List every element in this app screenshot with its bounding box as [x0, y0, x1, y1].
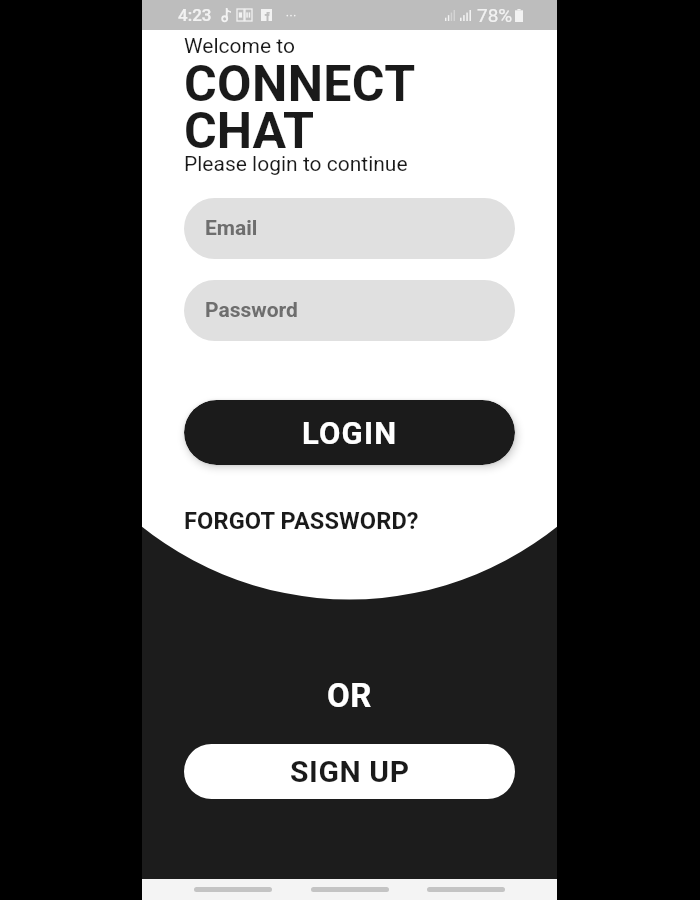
- button[interactable]: Password: [184, 280, 515, 341]
- staticText: CHAT: [184, 102, 315, 161]
- staticText: FORGOT PASSWORD?: [184, 507, 419, 535]
- button[interactable]: FORGOT PASSWORD?: [184, 507, 419, 535]
- staticText: OR: [327, 676, 372, 715]
- staticText: Email: [205, 216, 258, 241]
- staticText: 4:23: [178, 5, 212, 25]
- button[interactable]: Email: [184, 198, 515, 259]
- button[interactable]: Home: [311, 887, 389, 892]
- button[interactable]: LOGIN: [184, 400, 515, 465]
- button[interactable]: SIGN UP: [184, 744, 515, 799]
- button[interactable]: Recents: [194, 887, 272, 892]
- staticText: 78%: [477, 4, 513, 26]
- staticText: SIGN UP: [290, 754, 410, 789]
- staticText: Password: [205, 298, 298, 323]
- button[interactable]: Back: [427, 887, 505, 892]
- staticText: LOGIN: [302, 415, 398, 451]
- staticText: Welcome to: [184, 34, 295, 59]
- staticText: CONNECT: [184, 55, 416, 114]
- staticText: Please login to continue: [184, 152, 408, 177]
